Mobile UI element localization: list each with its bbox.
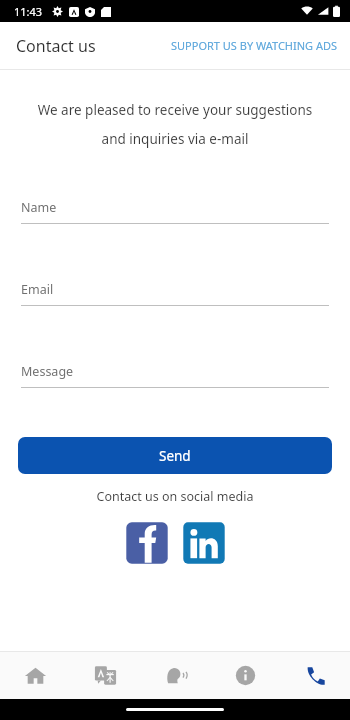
staticText: Name [21, 199, 57, 216]
button[interactable]: Home [0, 652, 70, 699]
staticText: 11:43 [14, 4, 43, 19]
staticText: Email [21, 281, 54, 298]
button[interactable]: Facebook [124, 520, 170, 566]
button[interactable]: Message [21, 363, 329, 388]
button[interactable]: Send [18, 437, 332, 474]
staticText: Message [21, 363, 74, 380]
staticText: Send [159, 447, 191, 465]
button[interactable]: Pronunciation [140, 652, 210, 699]
button[interactable]: Email [21, 281, 329, 306]
staticText: We are pleased to receive your suggestio… [0, 101, 350, 119]
button[interactable]: Contact us [280, 652, 350, 699]
button[interactable]: SUPPORT US BY WATCHING ADS [169, 32, 340, 59]
button[interactable]: Name [21, 199, 329, 224]
staticText: Contact us on social media [0, 488, 350, 505]
staticText: and inquiries via e-mail [0, 130, 350, 148]
staticText: Contact us [16, 35, 96, 57]
staticText: SUPPORT US BY WATCHING ADS [171, 38, 338, 53]
button[interactable]: Info [210, 652, 280, 699]
button[interactable]: LinkedIn [181, 520, 227, 566]
button[interactable]: Translate [70, 652, 140, 699]
